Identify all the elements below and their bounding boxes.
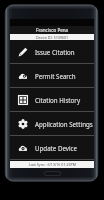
staticText: Last Sync : 6/13/16 01:23PM (29, 162, 76, 167)
staticText: Citation History (35, 96, 81, 104)
staticText: Permit Search (35, 72, 76, 80)
button[interactable]: Update Device (10, 136, 94, 159)
staticText: Issue Citation (35, 48, 75, 56)
button[interactable]: Application Settings (10, 112, 94, 135)
staticText: Application Settings (35, 120, 93, 128)
button[interactable]: Citation History (10, 88, 94, 111)
button[interactable]: Issue Citation (10, 40, 94, 63)
staticText: Device ID: 5749601 (36, 35, 69, 40)
button[interactable]: Permit Search (10, 64, 94, 87)
staticText: Francisco Pena (36, 27, 69, 33)
staticText: Update Device (35, 144, 78, 152)
